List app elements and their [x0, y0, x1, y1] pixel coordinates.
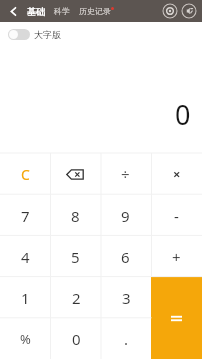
staticText: 0 — [72, 329, 81, 349]
staticText: 1 — [21, 288, 30, 308]
button[interactable]: 1 — [0, 277, 51, 318]
button[interactable]: Backspace — [50, 153, 100, 195]
staticText: 3 — [122, 288, 131, 308]
button[interactable]: ÷ — [100, 153, 151, 195]
staticText: + — [172, 247, 181, 267]
button[interactable]: Equals — [151, 277, 202, 359]
button[interactable]: Sound — [181, 3, 197, 19]
staticText: % — [20, 330, 31, 348]
staticText: 6 — [121, 247, 130, 267]
button[interactable]: 2 — [51, 277, 101, 318]
button[interactable]: 7 — [0, 195, 50, 236]
staticText: 8 — [71, 206, 80, 226]
button[interactable]: 0 — [51, 318, 101, 359]
staticText: 9 — [121, 206, 130, 226]
button[interactable]: - — [151, 195, 202, 236]
staticText: C — [21, 165, 30, 184]
button[interactable]: Back — [0, 0, 27, 22]
staticText: 0 — [175, 96, 191, 133]
button[interactable]: 5 — [50, 236, 100, 277]
staticText: 基础 — [27, 6, 45, 17]
button[interactable]: 9 — [100, 195, 151, 236]
button[interactable]: 科学 — [54, 0, 70, 22]
staticText: × — [173, 165, 181, 183]
staticText: 科学 — [54, 6, 70, 16]
button[interactable]: 基础 — [27, 0, 45, 22]
staticText: 7 — [21, 206, 30, 226]
button[interactable]: % — [0, 318, 51, 359]
button[interactable]: 大字版 — [0, 22, 202, 46]
button[interactable]: 3 — [101, 277, 151, 318]
staticText: . — [124, 329, 129, 349]
button[interactable]: . — [101, 318, 151, 359]
button[interactable]: 历史记录 — [79, 0, 114, 22]
button[interactable]: + — [151, 236, 202, 277]
staticText: 5 — [71, 247, 80, 267]
staticText: 大字版 — [34, 29, 61, 40]
button[interactable]: Theme — [162, 3, 178, 19]
button[interactable]: C — [0, 153, 50, 195]
button[interactable]: 8 — [50, 195, 100, 236]
staticText: - — [174, 206, 179, 226]
button[interactable]: 4 — [0, 236, 50, 277]
staticText: ÷ — [121, 164, 130, 184]
button[interactable]: × — [151, 153, 202, 195]
staticText: 4 — [21, 247, 30, 267]
button[interactable]: 6 — [100, 236, 151, 277]
staticText: 2 — [72, 288, 81, 308]
staticText: 历史记录 — [79, 6, 111, 16]
